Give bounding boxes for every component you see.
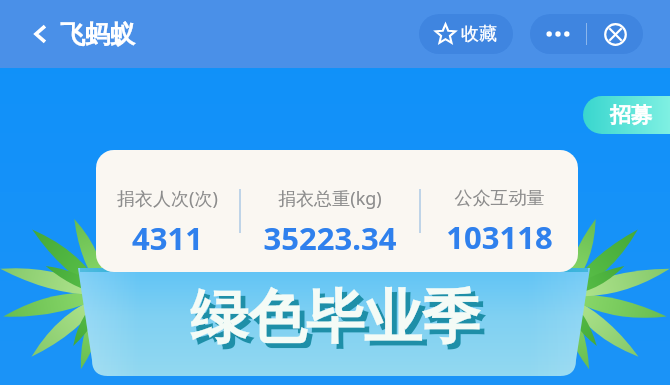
staticText: 绿色毕业季 bbox=[5, 286, 670, 359]
button[interactable]: 公众互动量 bbox=[421, 164, 578, 258]
button[interactable]: More options bbox=[530, 14, 586, 54]
button[interactable]: Back bbox=[24, 17, 58, 51]
staticText: 招募 bbox=[610, 102, 652, 128]
staticText: 35223.34 bbox=[245, 217, 415, 259]
button[interactable]: Close bbox=[587, 14, 643, 54]
button[interactable]: 捐衣人次(次) bbox=[96, 163, 239, 259]
button[interactable]: 捐衣总重(kg) bbox=[241, 163, 419, 259]
staticText: 绿色毕业季 bbox=[0, 281, 670, 354]
staticText: 飞蚂蚁 bbox=[60, 19, 135, 50]
staticText: 捐衣人次(次) bbox=[100, 186, 235, 211]
staticText: 收藏 bbox=[461, 23, 497, 46]
staticText: 4311 bbox=[100, 217, 235, 259]
staticText: 103118 bbox=[425, 216, 574, 258]
button[interactable]: 收藏 bbox=[419, 14, 513, 54]
button[interactable]: 招募 bbox=[583, 96, 670, 134]
staticText: 公众互动量 bbox=[425, 187, 574, 210]
staticText: 捐衣总重(kg) bbox=[245, 186, 415, 211]
